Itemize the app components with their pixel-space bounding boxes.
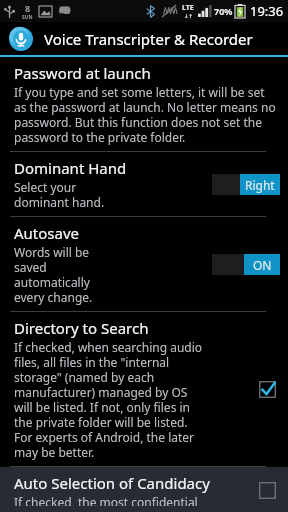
button[interactable]: Unchecked	[254, 477, 280, 503]
staticText: Password at launch	[14, 63, 151, 83]
staticText: If checked, when searching audio files, …	[14, 339, 203, 460]
button[interactable]: Autosave	[0, 217, 288, 311]
staticText: Right	[245, 177, 275, 193]
button[interactable]: Dominant Hand	[0, 152, 288, 216]
staticText: Autosave	[14, 223, 80, 243]
button[interactable]: Checked	[254, 376, 280, 402]
button[interactable]: Toggle ON	[212, 254, 280, 275]
staticText: 8	[25, 2, 31, 14]
staticText: Words will be saved automatically every …	[14, 244, 123, 305]
staticText: Voice Transcripter & Recorder	[44, 29, 253, 49]
staticText: LTE	[182, 3, 194, 13]
staticText: Dominant Hand	[14, 158, 127, 178]
staticText: ↓↑	[184, 13, 193, 19]
staticText: Auto Selection of Candidacy	[14, 473, 210, 493]
staticText: If checked, the most confidential candid…	[14, 494, 203, 506]
staticText: Select your dominant hand.	[14, 179, 123, 210]
staticText: 70%	[214, 5, 233, 17]
button[interactable]: Auto Selection of Candidacy	[0, 467, 288, 512]
staticText: 19:36	[250, 2, 284, 20]
button[interactable]: Toggle Right	[212, 174, 280, 195]
button[interactable]: Password at launch	[0, 57, 288, 151]
staticText: ON	[253, 257, 272, 273]
button[interactable]: Directory to Search	[0, 312, 288, 466]
staticText: SUN	[22, 14, 33, 21]
staticText: If you type and set some letters, it wil…	[14, 84, 280, 145]
staticText: Directory to Search	[14, 318, 149, 338]
